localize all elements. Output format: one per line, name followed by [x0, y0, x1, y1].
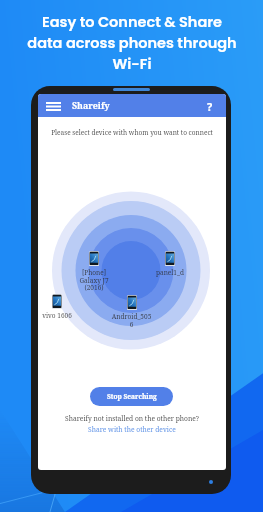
button[interactable]: Open navigation menu — [45, 99, 61, 113]
staticText: Easy to Connect & Share data across phon… — [27, 12, 237, 74]
button[interactable]: Help — [203, 99, 217, 113]
button[interactable]: Stop Searching — [90, 387, 173, 406]
staticText: vivo 1606 — [42, 311, 72, 320]
staticText: panel1_d — [156, 268, 184, 277]
staticText: Share with the other device — [88, 425, 176, 434]
button[interactable]: vivo 1606 — [38, 294, 77, 320]
button[interactable]: Share with the other device — [88, 425, 176, 434]
button[interactable]: [Phone] Galaxy J7 (2016) — [73, 251, 114, 292]
staticText: Android_5056 — [111, 312, 152, 329]
staticText: ? — [207, 99, 213, 113]
staticText: Stop Searching — [107, 392, 157, 401]
staticText: Please select device with whom you want … — [38, 128, 226, 137]
staticText: [Phone] Galaxy J7 (2016) — [79, 268, 109, 292]
staticText: Shareify — [72, 100, 110, 112]
button[interactable]: Android_5056 — [111, 295, 152, 329]
button[interactable]: panel1_d — [149, 251, 190, 277]
staticText: Shareify not installed on the other phon… — [65, 414, 199, 423]
